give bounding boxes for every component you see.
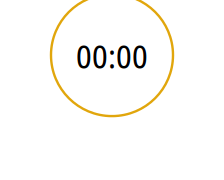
- staticText: 00:00: [76, 33, 148, 78]
